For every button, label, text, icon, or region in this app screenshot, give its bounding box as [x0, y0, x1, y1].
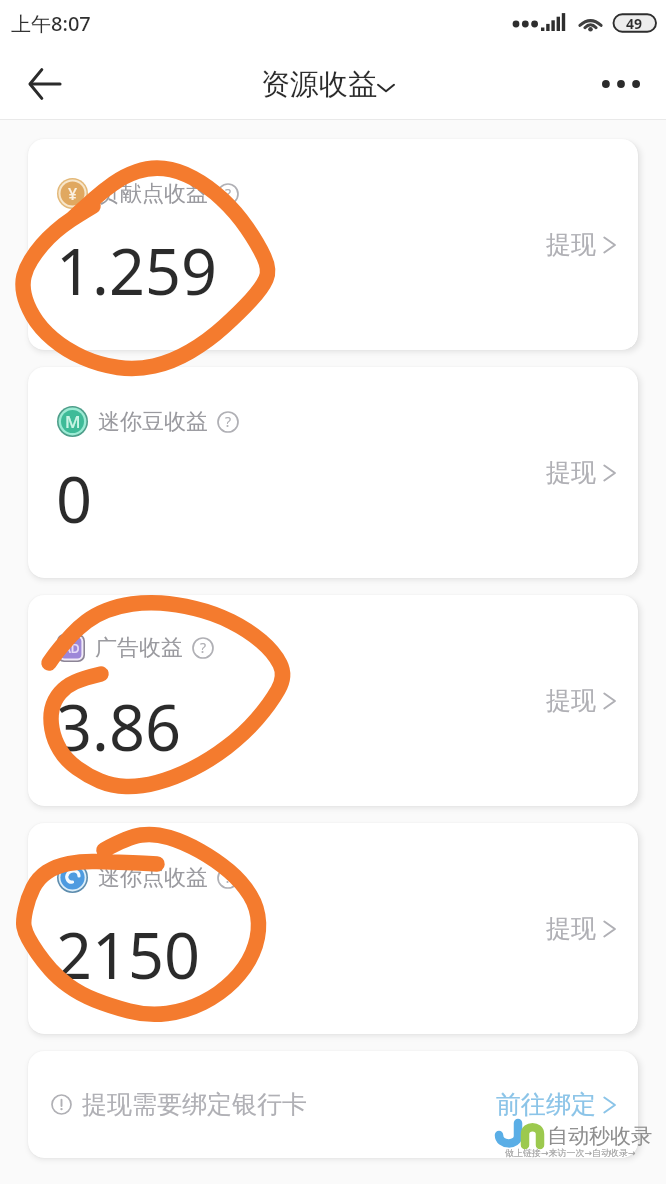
staticText: AD: [63, 640, 80, 656]
staticText: ?: [225, 412, 232, 431]
staticText: 广告收益: [95, 634, 183, 662]
staticText: ?: [225, 868, 232, 887]
button[interactable]: 前往绑定: [496, 1089, 616, 1120]
staticText: 迷你豆收益: [98, 408, 208, 436]
button[interactable]: AD: [28, 595, 638, 806]
button[interactable]: Back: [14, 53, 76, 115]
staticText: 迷你点收益: [98, 864, 208, 892]
button[interactable]: 迷你点收益: [28, 823, 638, 1034]
staticText: 2150: [56, 912, 201, 998]
staticText: 上午8:07: [11, 10, 91, 37]
staticText: 49: [626, 14, 643, 33]
staticText: 0: [56, 456, 93, 542]
button[interactable]: M: [28, 367, 638, 578]
staticText: 提现: [546, 229, 596, 260]
staticText: 提现: [546, 685, 596, 716]
staticText: 自动秒收录: [547, 1123, 652, 1149]
button[interactable]: 提现: [546, 913, 616, 944]
staticText: 提现: [546, 457, 596, 488]
staticText: 3.86: [56, 684, 181, 770]
button[interactable]: More options: [592, 53, 654, 115]
button[interactable]: 提现: [546, 685, 616, 716]
button[interactable]: 提现: [546, 457, 616, 488]
staticText: M: [65, 410, 81, 433]
staticText: ?: [200, 638, 207, 657]
button[interactable]: 提现: [546, 229, 616, 260]
staticText: 做上链接→来访一次→自动收录→: [505, 1147, 636, 1158]
staticText: 提现: [546, 913, 596, 944]
staticText: 资源收益: [261, 66, 377, 103]
button[interactable]: 资源收益: [261, 66, 394, 103]
staticText: 提现需要绑定银行卡: [82, 1089, 307, 1120]
staticText: 1.259: [56, 228, 218, 314]
button[interactable]: ¥: [28, 139, 638, 350]
staticText: ?: [225, 184, 232, 203]
staticText: 贡献点收益: [98, 180, 208, 208]
staticText: ¥: [68, 183, 78, 205]
staticText: 前往绑定: [496, 1089, 596, 1120]
